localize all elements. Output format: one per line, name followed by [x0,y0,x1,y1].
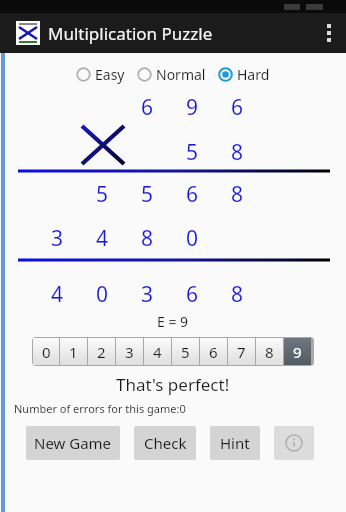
button[interactable]: 4 [144,338,171,365]
staticText: 3 [51,224,64,253]
staticText: 2 [97,342,106,362]
button[interactable]: Hard [216,63,272,86]
staticText: E = 9 [157,312,189,331]
button[interactable]: 9 [284,338,311,365]
staticText: 0 [96,280,109,309]
staticText: Multiplication Puzzle [48,22,213,45]
button[interactable]: 3 [116,338,143,365]
staticText: Hard [237,65,270,84]
staticText: 7 [237,342,246,362]
button[interactable]: 7 [228,338,255,365]
staticText: 6 [186,180,199,209]
button[interactable]: Normal [135,63,208,86]
staticText: 8 [231,280,244,309]
staticText: 5 [181,342,190,362]
button[interactable]: 1 [60,338,87,365]
staticText: 4 [96,224,109,253]
staticText: 8 [141,224,154,253]
staticText: Number of errors for this game:0 [14,401,186,416]
staticText: 3 [141,280,154,309]
staticText: Hint [220,433,250,453]
staticText: 6 [186,280,199,309]
staticText: 0 [42,342,51,362]
staticText: 9 [186,93,199,122]
staticText: 6 [209,342,218,362]
staticText: 8 [231,180,244,209]
staticText: Easy [95,65,125,84]
staticText: 9 [293,342,302,362]
staticText: Check [144,433,187,453]
staticText: 1 [69,342,78,362]
button[interactable]: Hint [210,426,260,460]
staticText: That's perfect! [116,373,230,396]
staticText: 8 [231,138,244,167]
staticText: 3 [125,342,134,362]
staticText: 8 [265,342,274,362]
staticText: 4 [51,280,64,309]
button[interactable]: Check [134,426,196,460]
staticText: 5 [186,138,199,167]
staticText: 6 [141,93,154,122]
button[interactable]: Easy [74,63,127,86]
button[interactable]: Info [274,426,314,460]
staticText: 5 [96,180,109,209]
button[interactable]: 8 [256,338,283,365]
button[interactable]: 6 [200,338,227,365]
staticText: 4 [153,342,162,362]
staticText: Normal [156,65,206,84]
button[interactable]: More options [312,13,346,53]
button[interactable]: 0 [33,338,59,365]
button[interactable]: 5 [172,338,199,365]
button[interactable]: 2 [88,338,115,365]
button[interactable]: New Game [26,426,120,460]
staticText: 0 [186,224,199,253]
staticText: New Game [34,433,112,453]
staticText: 5 [141,180,154,209]
staticText: 6 [231,93,244,122]
